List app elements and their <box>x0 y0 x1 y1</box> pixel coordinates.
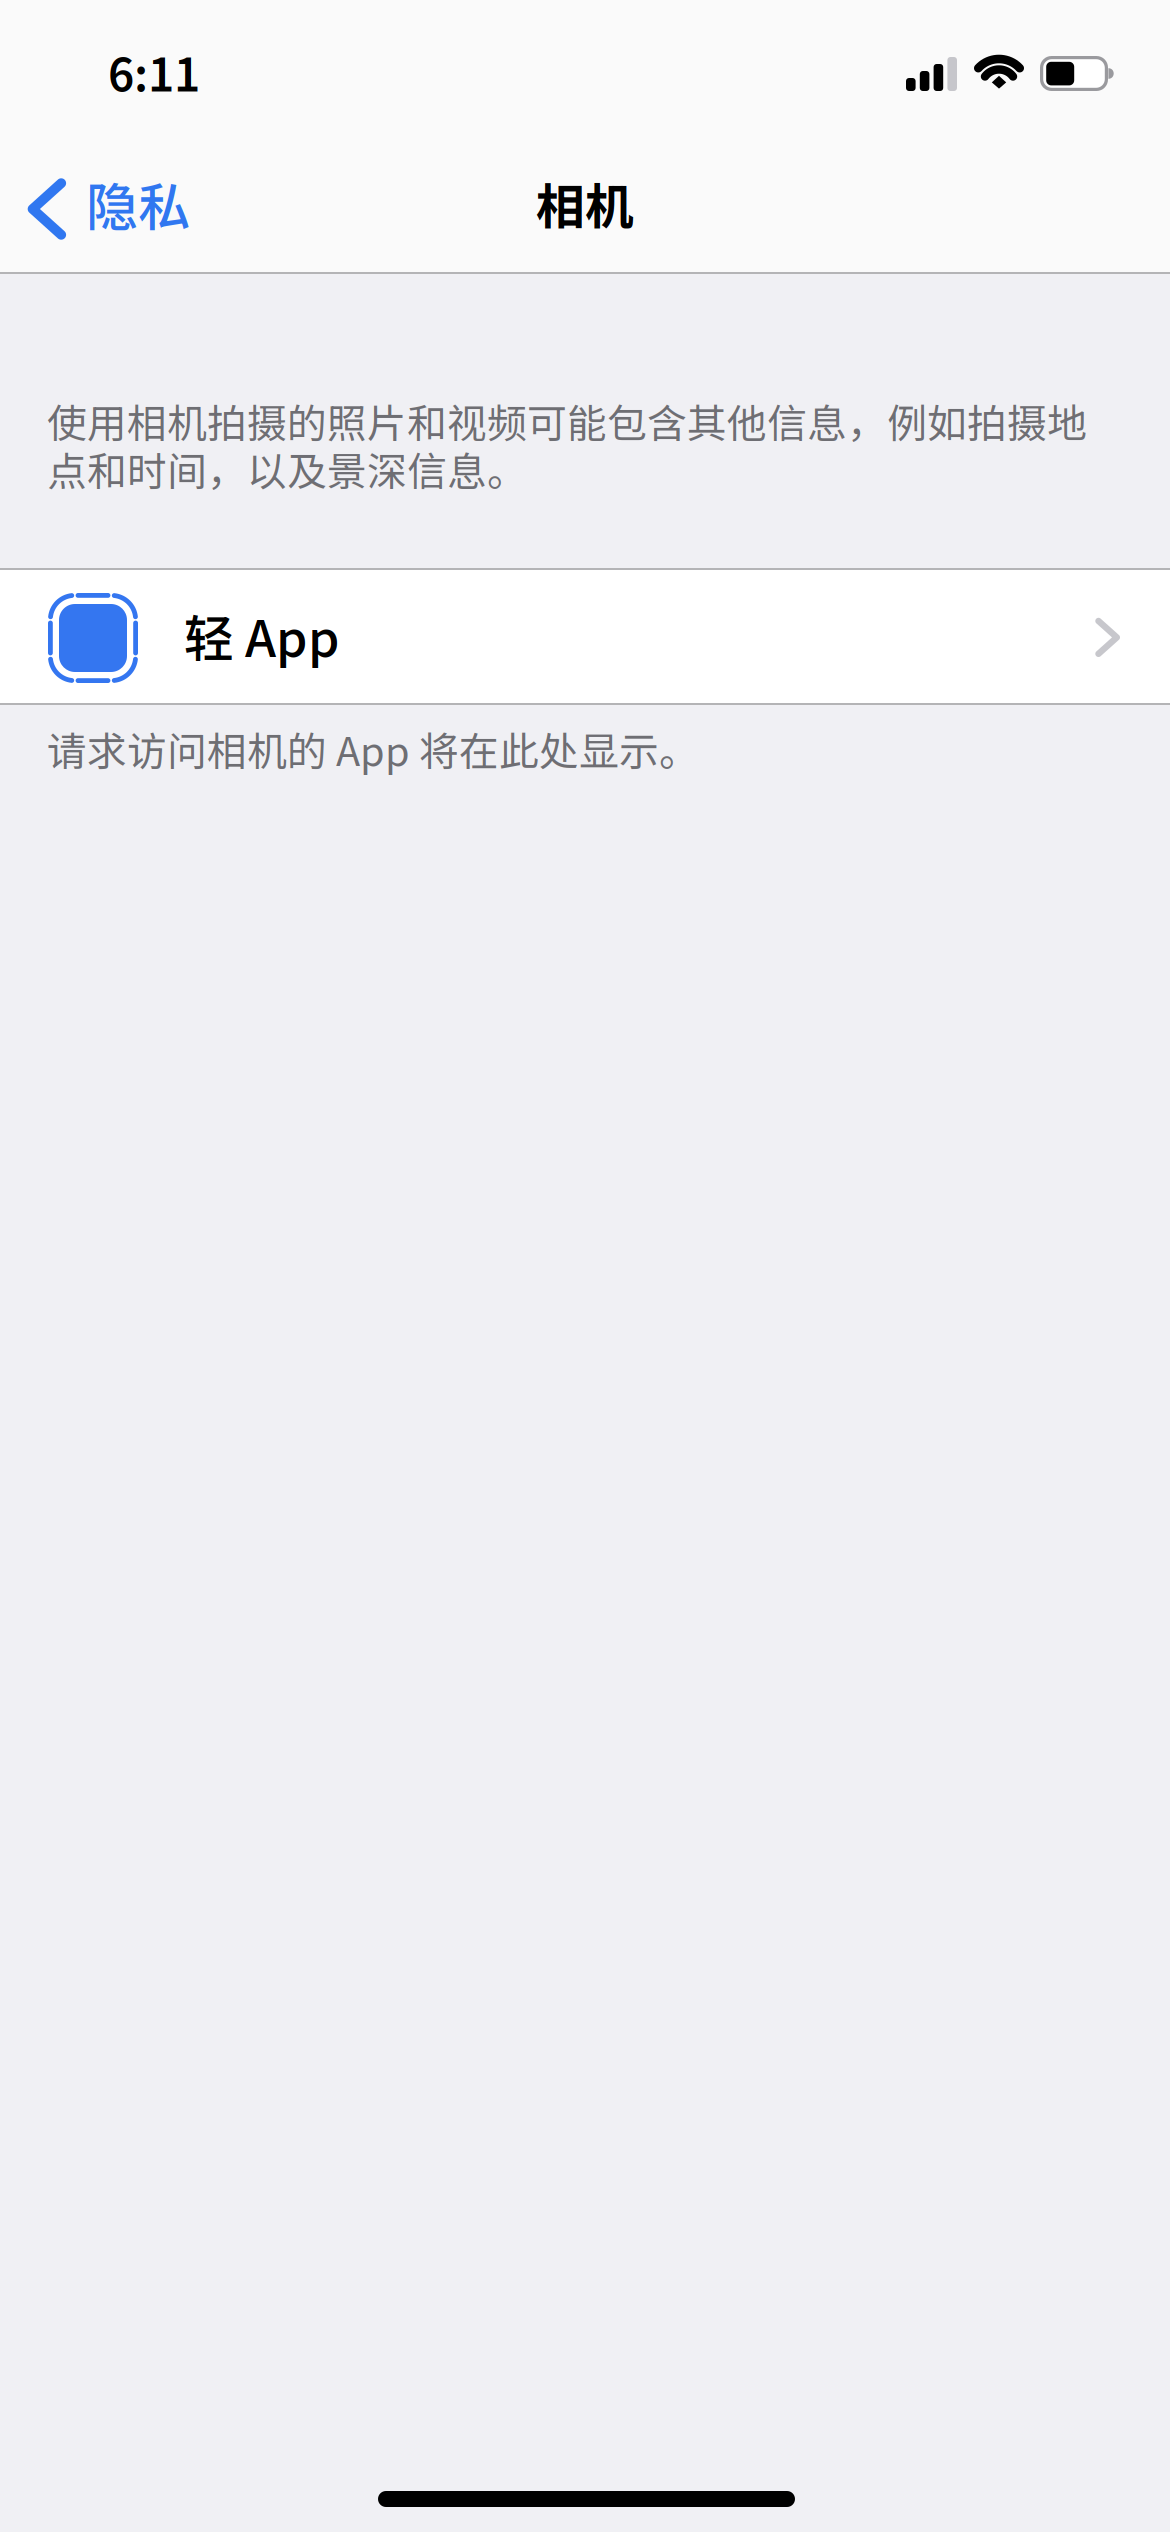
staticText: 请求访问相机的 App 将在此处显示。 <box>47 720 699 777</box>
staticText: 相机 <box>536 168 634 238</box>
staticText: 轻 App <box>184 599 340 671</box>
staticText: 6:11 <box>108 39 200 105</box>
staticText: 隐私 <box>86 166 190 241</box>
button[interactable]: 隐私 <box>0 141 210 269</box>
staticText: 使用相机拍摄的照片和视频可能包含其他信息，例如拍摄地 <box>47 392 1087 449</box>
button[interactable]: 轻 App <box>0 570 1170 703</box>
staticText: 点和时间，以及景深信息。 <box>47 440 527 497</box>
